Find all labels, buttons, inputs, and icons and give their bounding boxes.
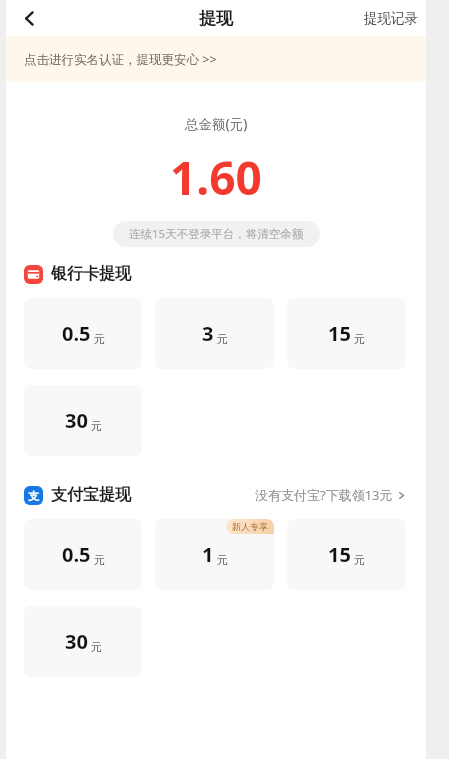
button[interactable]: 30 (24, 606, 142, 677)
staticText: 1.60 (170, 146, 262, 209)
staticText: 提现记录 (364, 10, 418, 27)
button[interactable]: 没有支付宝?下载领13元 (255, 482, 406, 508)
staticText: 元 (94, 553, 105, 567)
button[interactable]: 15 (287, 298, 406, 369)
button[interactable]: 30 (24, 385, 142, 456)
staticText: 支 (28, 489, 39, 503)
staticText: 15 (328, 320, 351, 347)
staticText: 元 (354, 332, 365, 346)
staticText: 元 (94, 332, 105, 346)
staticText: 3 (202, 320, 214, 347)
staticText: 没有支付宝?下载领13元 (255, 486, 393, 504)
staticText: 0.5 (62, 541, 91, 568)
button[interactable]: 15 (287, 519, 406, 590)
button[interactable]: 0.5 (24, 298, 142, 369)
button[interactable]: Back (12, 1, 46, 35)
staticText: 1 (202, 541, 214, 568)
button[interactable]: 提现记录 (356, 4, 426, 33)
staticText: 银行卡提现 (51, 264, 131, 284)
staticText: 新人专享 (232, 521, 268, 532)
staticText: 支付宝提现 (51, 485, 131, 505)
staticText: 连续15天不登录平台，将清空余额 (129, 226, 304, 242)
staticText: 元 (91, 640, 102, 654)
staticText: 元 (217, 553, 228, 567)
staticText: 30 (65, 407, 88, 434)
button[interactable]: 点击进行实名认证，提现更安心 >> (6, 36, 426, 82)
staticText: 点击进行实名认证，提现更安心 >> (24, 51, 217, 68)
staticText: 总金额(元) (185, 115, 248, 133)
staticText: 元 (217, 332, 228, 346)
staticText: 15 (328, 541, 351, 568)
staticText: 30 (65, 628, 88, 655)
button[interactable]: 1 (155, 519, 274, 590)
staticText: 元 (91, 419, 102, 433)
staticText: 提现 (199, 8, 233, 29)
button[interactable]: 0.5 (24, 519, 142, 590)
staticText: 0.5 (62, 320, 91, 347)
button[interactable]: 3 (155, 298, 274, 369)
staticText: 元 (354, 553, 365, 567)
